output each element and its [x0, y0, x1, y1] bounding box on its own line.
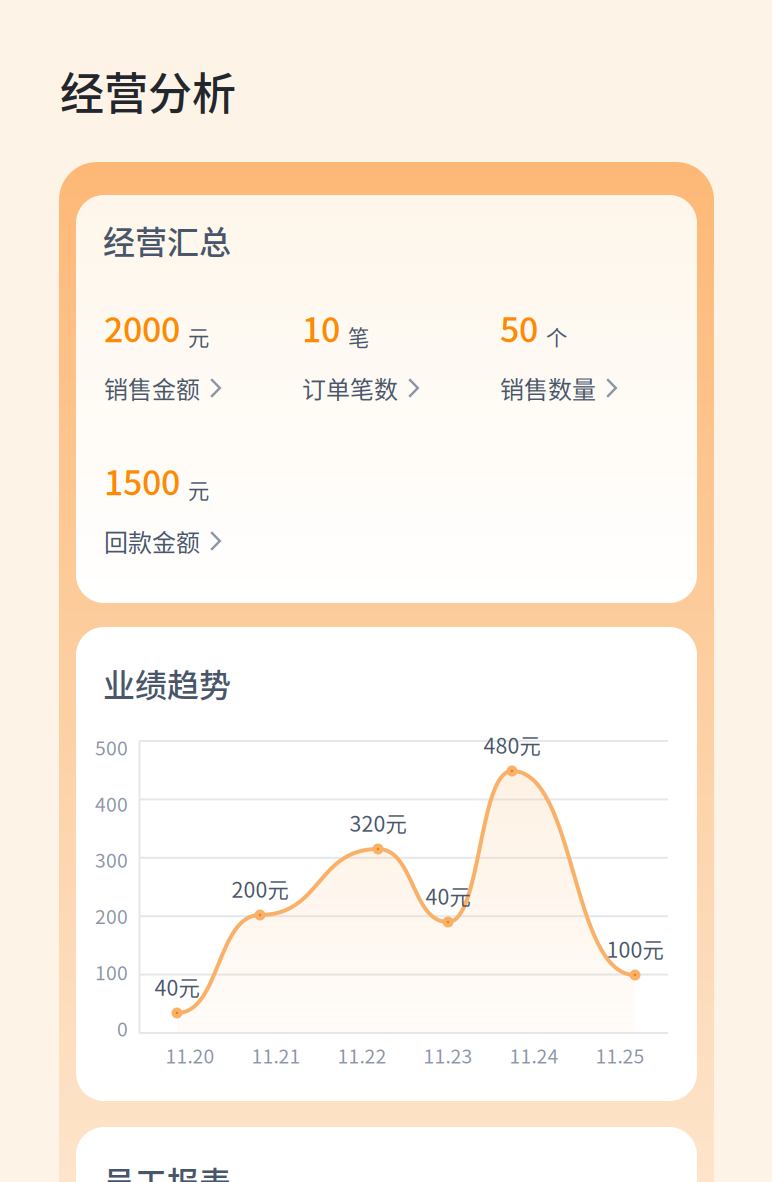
staticText: 500: [95, 733, 128, 761]
staticText: 元: [188, 321, 209, 352]
staticText: 11.22: [337, 1041, 386, 1069]
staticText: 元: [188, 474, 209, 505]
button[interactable]: 2000: [104, 322, 302, 401]
staticText: 销售金额: [104, 371, 200, 405]
button[interactable]: 10: [302, 322, 500, 401]
staticText: 业绩趋势: [103, 660, 231, 706]
staticText: 480元: [483, 729, 540, 760]
staticText: 100: [95, 958, 128, 986]
staticText: 订单笔数: [302, 371, 398, 405]
staticText: 1500: [104, 456, 180, 505]
staticText: 11.25: [595, 1041, 644, 1069]
staticText: 0: [117, 1014, 128, 1042]
staticText: 320元: [349, 807, 406, 838]
staticText: 200元: [231, 873, 288, 904]
staticText: 10: [302, 303, 340, 352]
staticText: 笔: [348, 321, 369, 352]
staticText: 经营分析: [60, 59, 236, 123]
staticText: 200: [95, 902, 128, 930]
button[interactable]: 1500: [104, 475, 302, 554]
staticText: 400: [95, 789, 128, 817]
staticText: 11.23: [423, 1041, 472, 1069]
staticText: 个: [546, 321, 567, 352]
staticText: 300: [95, 845, 128, 873]
staticText: 11.20: [165, 1041, 214, 1069]
staticText: 销售数量: [500, 371, 596, 405]
button[interactable]: 50: [500, 322, 698, 401]
staticText: 员工报表: [103, 1158, 231, 1182]
staticText: 40元: [154, 971, 199, 1002]
staticText: 经营汇总: [103, 217, 231, 263]
staticText: 2000: [104, 303, 180, 352]
staticText: 50: [500, 303, 538, 352]
staticText: 40元: [425, 880, 470, 911]
staticText: 11.21: [251, 1041, 300, 1069]
staticText: 100元: [606, 933, 663, 964]
staticText: 回款金额: [104, 524, 200, 558]
staticText: 11.24: [509, 1041, 558, 1069]
